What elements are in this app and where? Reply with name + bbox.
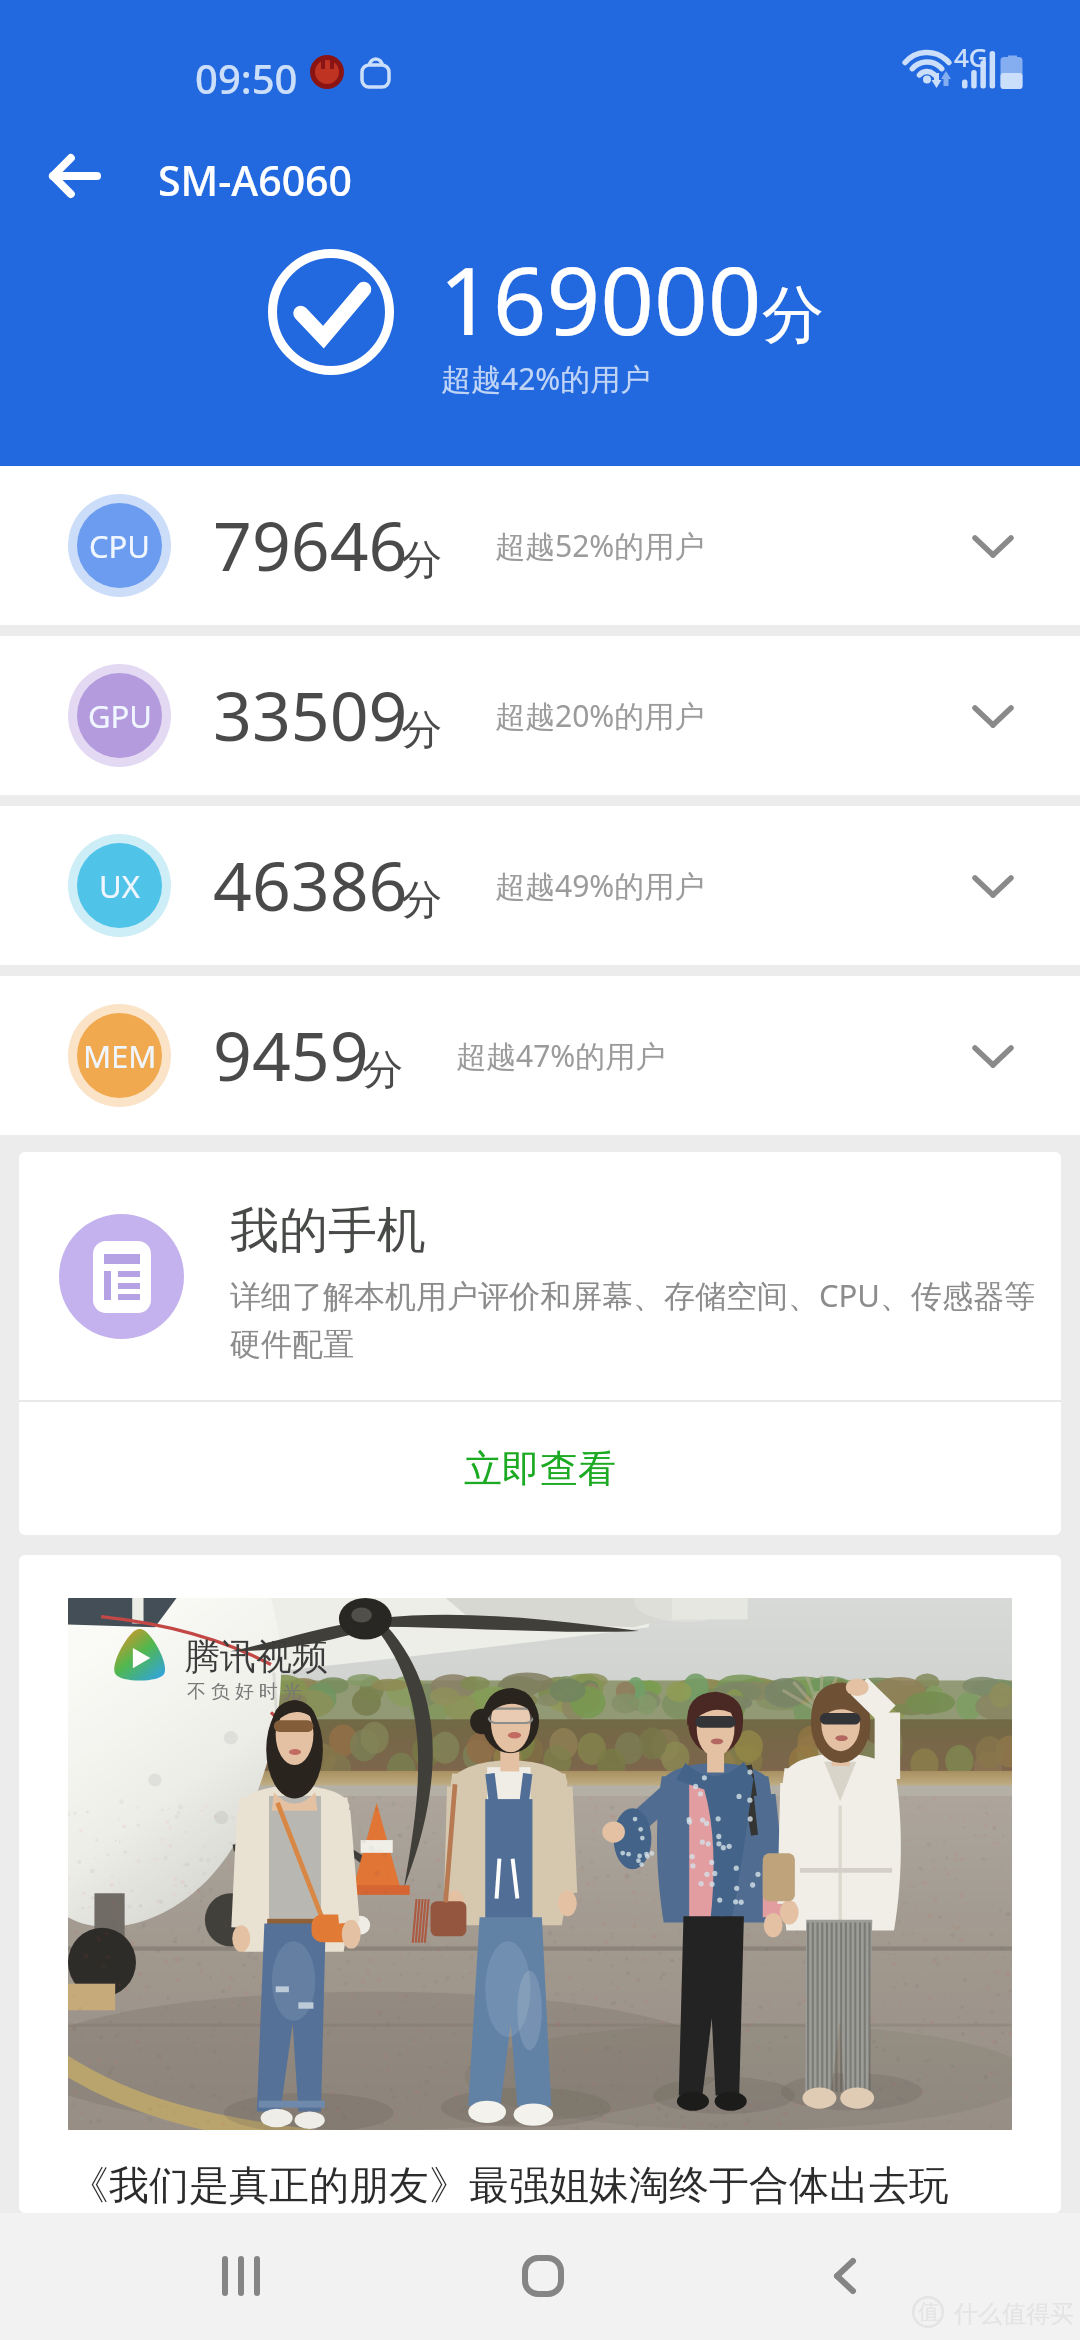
- button[interactable]: Home: [473, 2220, 613, 2332]
- staticText: 详细了解本机用户评价和屏幕、存储空间、CPU、传感器等 硬件配置: [230, 1274, 1060, 1364]
- staticText: 79646: [213, 498, 408, 591]
- staticText: 46386: [213, 838, 408, 931]
- staticText: 4G: [954, 39, 988, 74]
- button[interactable]: Expand: [938, 491, 1048, 601]
- staticText: 我的手机: [230, 1200, 426, 1262]
- staticText: 9459: [213, 1008, 369, 1101]
- button[interactable]: Recents: [171, 2220, 311, 2332]
- button[interactable]: Back: [775, 2220, 915, 2332]
- staticText: MEM: [83, 1035, 157, 1077]
- staticText: 169000: [439, 235, 762, 363]
- staticText: 超越52%的用户: [495, 525, 705, 566]
- button[interactable]: Video thumbnail: [68, 1598, 1012, 2130]
- staticText: 分: [401, 875, 442, 927]
- staticText: 33509: [213, 668, 408, 761]
- button[interactable]: Expand: [938, 831, 1048, 941]
- staticText: 什么值得买: [954, 2299, 1074, 2329]
- staticText: CPU: [89, 525, 151, 567]
- button[interactable]: CPU: [0, 466, 1080, 625]
- staticText: 超越49%的用户: [495, 865, 705, 906]
- staticText: 超越20%的用户: [495, 695, 705, 736]
- staticText: 不 负 好 时 光: [187, 1678, 302, 1704]
- staticText: 分: [401, 705, 442, 757]
- button[interactable]: 立即查看: [19, 1402, 1061, 1535]
- staticText: 超越42%的用户: [441, 358, 651, 399]
- staticText: 《我们是真正的朋友》最强姐妹淘终于合体出去玩: [69, 2160, 949, 2210]
- staticText: 分: [362, 1045, 403, 1097]
- button[interactable]: UX: [0, 806, 1080, 965]
- staticText: UX: [99, 865, 140, 907]
- staticText: 分: [401, 535, 442, 587]
- staticText: 分: [762, 276, 824, 354]
- staticText: 超越47%的用户: [456, 1035, 666, 1076]
- button[interactable]: Expand: [938, 661, 1048, 771]
- staticText: GPU: [88, 695, 152, 737]
- staticText: 腾讯视频: [184, 1634, 328, 1679]
- button[interactable]: 我的手机: [19, 1152, 1061, 1400]
- staticText: 09:50: [195, 51, 298, 105]
- staticText: 立即查看: [464, 1445, 616, 1493]
- button[interactable]: Back: [20, 121, 130, 231]
- button[interactable]: MEM: [0, 976, 1080, 1135]
- button[interactable]: Expand: [938, 1001, 1048, 1111]
- button[interactable]: GPU: [0, 636, 1080, 795]
- staticText: 值: [918, 2299, 939, 2325]
- staticText: SM-A6060: [158, 152, 353, 208]
